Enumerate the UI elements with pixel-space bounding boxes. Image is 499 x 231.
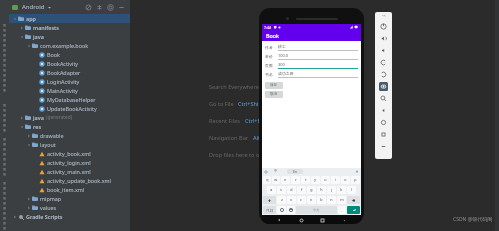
button[interactable]: f xyxy=(297,186,306,194)
staticText: activity_book.xml xyxy=(47,150,91,157)
button[interactable]: p xyxy=(351,176,360,184)
button[interactable]: java xyxy=(9,32,130,41)
button[interactable] xyxy=(355,170,359,174)
button[interactable]: k xyxy=(337,186,346,194)
button[interactable]: Book xyxy=(9,50,130,59)
button[interactable]: Hide xyxy=(118,4,125,11)
button[interactable]: BookAdapter xyxy=(9,68,130,77)
button[interactable]: Zoom xyxy=(375,92,392,104)
staticText: Ctrl+Shift+N xyxy=(238,100,270,108)
button[interactable]: book_item.xml xyxy=(9,185,130,194)
button[interactable]: w xyxy=(272,176,280,184)
button[interactable]: Space xyxy=(296,206,337,214)
button[interactable]: Favorites xyxy=(0,134,9,174)
button[interactable]: Power xyxy=(375,20,392,32)
button[interactable]: More xyxy=(375,140,392,152)
button[interactable]: activity_update_book.xml xyxy=(9,176,130,185)
button[interactable]: Collapse all xyxy=(85,4,92,11)
button[interactable]: i xyxy=(331,176,340,184)
button[interactable]: Gradle Scripts xyxy=(9,212,130,221)
staticText: n xyxy=(330,197,333,203)
button[interactable]: Resource Manager xyxy=(0,20,9,94)
staticText: g xyxy=(310,187,313,193)
staticText: MyDatabaseHelper xyxy=(47,96,96,103)
staticText: i xyxy=(335,177,337,183)
staticText: q xyxy=(266,177,269,183)
button[interactable]: l xyxy=(347,186,356,194)
button[interactable]: s xyxy=(277,186,286,194)
button[interactable]: u xyxy=(321,176,330,184)
button[interactable]: 取消 xyxy=(265,91,283,98)
button[interactable]: Hide keyboard xyxy=(340,216,348,224)
button[interactable]: . xyxy=(338,206,346,214)
button[interactable]: j xyxy=(327,186,336,194)
button[interactable]: activity_login.xml xyxy=(9,158,130,167)
staticText: j xyxy=(331,187,333,193)
button[interactable]: e xyxy=(281,176,290,184)
button[interactable]: Back xyxy=(375,104,392,116)
button[interactable]: MyDatabaseHelper xyxy=(9,95,130,104)
staticText: 耕工 xyxy=(278,44,286,49)
button[interactable]: t xyxy=(301,176,310,184)
button[interactable]: ?123 xyxy=(263,206,276,214)
button[interactable]: MainActivity xyxy=(9,86,130,95)
button[interactable]: app xyxy=(9,14,130,23)
button[interactable]: mipmap xyxy=(9,194,130,203)
button[interactable]: Settings xyxy=(107,4,114,11)
button[interactable]: Close xyxy=(375,12,392,20)
button[interactable]: r xyxy=(291,176,300,184)
button[interactable]: Enter xyxy=(347,206,360,214)
button[interactable]: Expand xyxy=(96,4,103,11)
button[interactable]: x xyxy=(287,196,296,204)
button[interactable]: res xyxy=(9,122,130,131)
button[interactable]: Android xyxy=(22,3,52,11)
staticText: BookActivity xyxy=(47,60,79,67)
button[interactable]: z xyxy=(277,196,286,204)
button[interactable]: Shift xyxy=(263,196,276,204)
button[interactable]: o xyxy=(341,176,350,184)
button[interactable]: Recents xyxy=(318,216,326,224)
button[interactable]: Language xyxy=(277,206,286,214)
button[interactable]: Volume up xyxy=(375,32,392,44)
button[interactable]: Back xyxy=(275,216,283,224)
staticText: manifests xyxy=(33,24,59,31)
button[interactable]: com.example.book xyxy=(9,41,130,50)
button[interactable]: Home xyxy=(375,116,392,128)
button[interactable]: Emoji xyxy=(287,206,295,214)
button[interactable]: layout xyxy=(9,140,130,149)
button[interactable]: m xyxy=(337,196,346,204)
button[interactable]: g xyxy=(307,186,316,194)
button[interactable]: n xyxy=(327,196,336,204)
staticText: y xyxy=(314,177,317,183)
button[interactable]: b xyxy=(317,196,326,204)
button[interactable]: Volume down xyxy=(375,44,392,56)
button[interactable]: q xyxy=(263,176,271,184)
button[interactable]: Home xyxy=(297,216,305,224)
button[interactable]: Overview xyxy=(375,128,392,140)
button[interactable]: d xyxy=(287,186,296,194)
button[interactable]: Project xyxy=(0,100,9,134)
button[interactable]: h xyxy=(317,186,326,194)
button[interactable]: Book xyxy=(262,30,361,41)
button[interactable]: manifests xyxy=(9,23,130,32)
button[interactable]: 保存 xyxy=(265,82,283,89)
button[interactable]: LoginActivity xyxy=(9,77,130,86)
button[interactable]: Rotate left xyxy=(375,56,392,68)
button[interactable]: v xyxy=(307,196,316,204)
button[interactable]: java xyxy=(9,113,130,122)
button[interactable]: activity_book.xml xyxy=(9,149,130,158)
button[interactable]: Build Variants xyxy=(0,178,9,230)
button[interactable]: values xyxy=(9,203,130,212)
button[interactable]: c xyxy=(297,196,306,204)
button[interactable]: drawable xyxy=(9,131,130,140)
button[interactable]: y xyxy=(311,176,320,184)
button[interactable]: En xyxy=(287,169,303,174)
staticText: MainActivity xyxy=(47,87,78,94)
button[interactable]: UpdateBookActivity xyxy=(9,104,130,113)
button[interactable]: Rotate right xyxy=(375,68,392,80)
button[interactable]: activity_main.xml xyxy=(9,167,130,176)
button[interactable]: a xyxy=(267,186,276,194)
button[interactable]: Backspace xyxy=(347,196,360,204)
button[interactable]: Screenshot xyxy=(375,80,392,92)
button[interactable]: BookActivity xyxy=(9,59,130,68)
